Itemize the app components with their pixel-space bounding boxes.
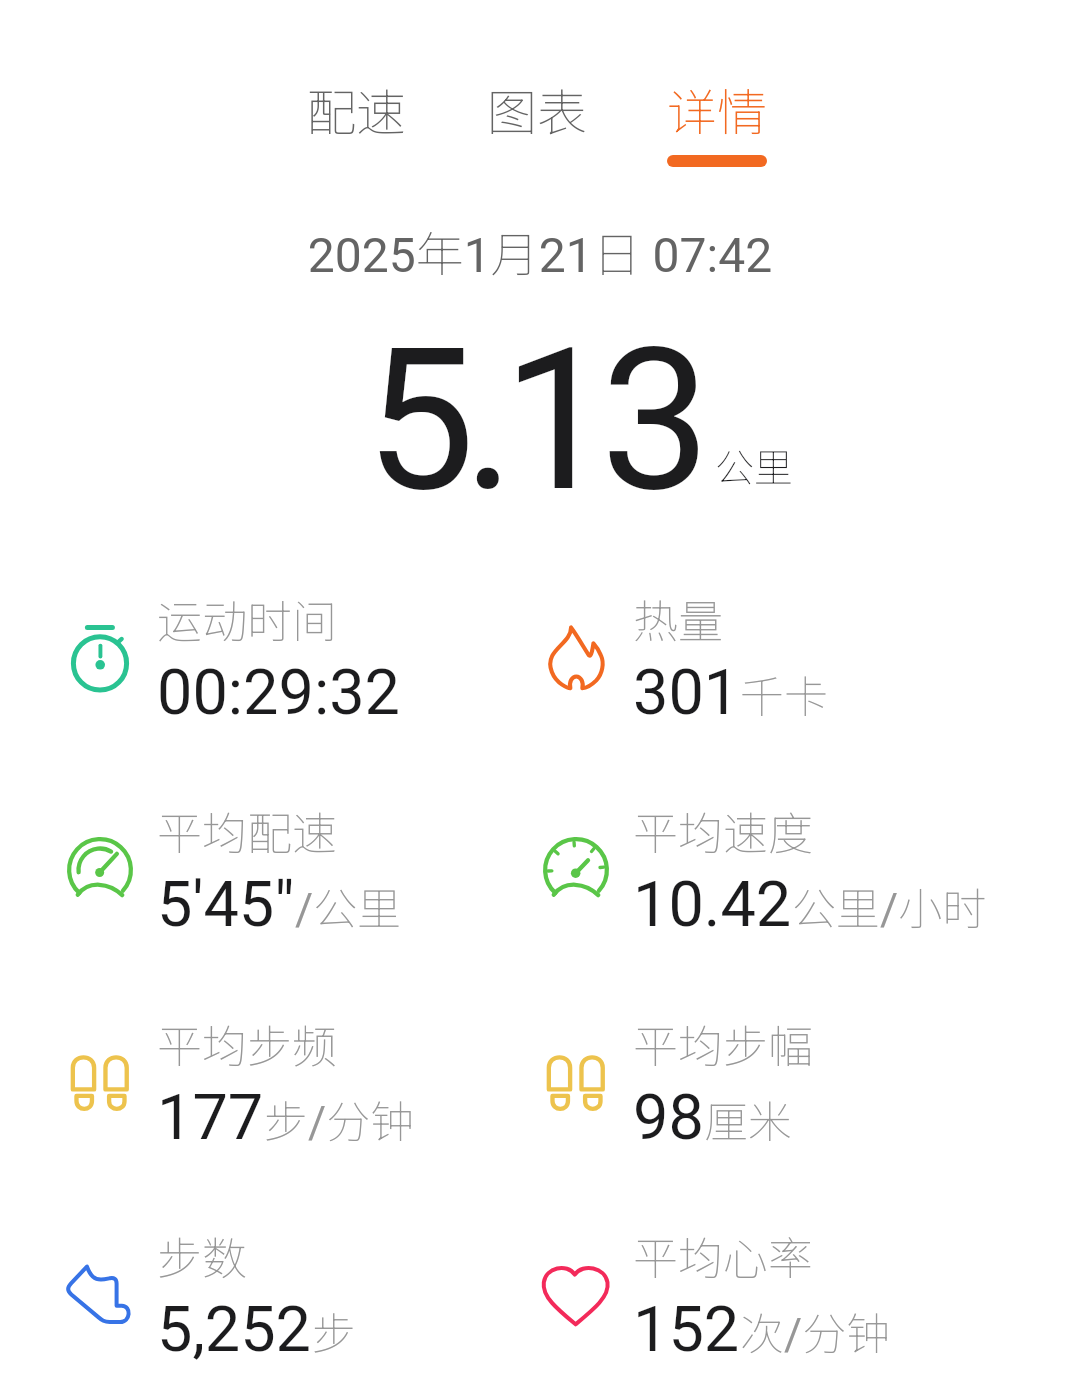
staticText: 图表 [487, 73, 587, 145]
button[interactable]: Average pace [65, 795, 535, 945]
staticText: 平均步频 [157, 1011, 338, 1076]
staticText: 详情 [667, 73, 767, 145]
staticText: 步/分钟 [264, 1087, 415, 1151]
staticText: 热量 [633, 586, 724, 651]
staticText: 运动时间 [157, 586, 338, 651]
staticText: 平均配速 [157, 798, 338, 863]
staticText: 152 [633, 1293, 740, 1367]
staticText: 177 [157, 1081, 264, 1155]
button[interactable]: 配速 [271, 73, 441, 167]
staticText: 平均速度 [633, 798, 814, 863]
staticText: 00:29:32 [157, 656, 400, 730]
other: Steps [65, 1260, 135, 1330]
staticText: 公里/小时 [792, 874, 987, 938]
staticText: 公里 [715, 437, 794, 493]
other: Average cadence [65, 1048, 135, 1118]
staticText: 平均心率 [633, 1223, 814, 1288]
button[interactable]: Average heart rate [541, 1220, 1011, 1370]
button[interactable]: Workout time [65, 583, 535, 733]
button[interactable]: 图表 [452, 73, 622, 167]
other: Workout time [65, 623, 135, 693]
staticText: 2025年1月21日 07:42 [0, 216, 1080, 286]
button[interactable]: Steps [65, 1220, 535, 1370]
staticText: 配速 [306, 73, 406, 145]
button[interactable]: Calories [541, 583, 1011, 733]
staticText: 5.13 [365, 306, 699, 536]
staticText: 5,252 [157, 1293, 312, 1367]
staticText: 次/分钟 [740, 1299, 891, 1363]
staticText: 10.42 [633, 868, 792, 942]
button[interactable]: 详情 [632, 73, 802, 167]
button[interactable]: Average cadence [65, 1008, 535, 1158]
staticText: 步数 [157, 1223, 248, 1288]
staticText: 98 [633, 1081, 704, 1155]
staticText: 301 [633, 656, 740, 730]
other: Average speed [541, 835, 611, 905]
other: Average stride [541, 1048, 611, 1118]
button[interactable]: Average speed [541, 795, 1011, 945]
other: Average heart rate [541, 1260, 611, 1330]
staticText: 5'45" [157, 868, 295, 942]
staticText: 平均步幅 [633, 1011, 814, 1076]
button[interactable]: Average stride [541, 1008, 1011, 1158]
other: Calories [541, 623, 611, 693]
staticText: 厘米 [704, 1087, 792, 1151]
staticText: /公里 [295, 874, 402, 938]
staticText: 千卡 [740, 662, 828, 726]
other: Average pace [65, 835, 135, 905]
staticText: 步 [312, 1299, 356, 1363]
